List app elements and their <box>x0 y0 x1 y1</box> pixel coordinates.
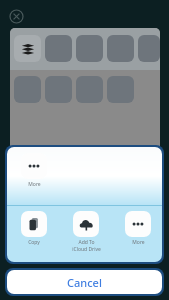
button[interactable]: App <box>45 76 72 103</box>
button[interactable]: Cancel <box>7 270 162 294</box>
staticText: Copy <box>28 239 40 246</box>
button[interactable]: Layers <box>14 35 41 62</box>
button[interactable]: App <box>14 76 41 103</box>
button[interactable]: App <box>107 76 134 103</box>
button[interactable]: More <box>15 153 53 188</box>
button[interactable]: App <box>76 35 103 62</box>
button[interactable]: Add To iCloud Drive <box>67 211 105 252</box>
button[interactable]: More <box>119 211 157 246</box>
button[interactable]: Copy <box>15 211 53 246</box>
button[interactable]: App <box>45 35 72 62</box>
staticText: More <box>132 239 145 246</box>
button[interactable]: Close <box>9 9 24 24</box>
staticText: More <box>28 181 41 188</box>
staticText: Add To iCloud Drive <box>72 239 101 252</box>
button[interactable]: App <box>138 35 160 62</box>
staticText: Cancel <box>67 275 102 290</box>
button[interactable]: App <box>76 76 103 103</box>
button[interactable]: App <box>107 35 134 62</box>
